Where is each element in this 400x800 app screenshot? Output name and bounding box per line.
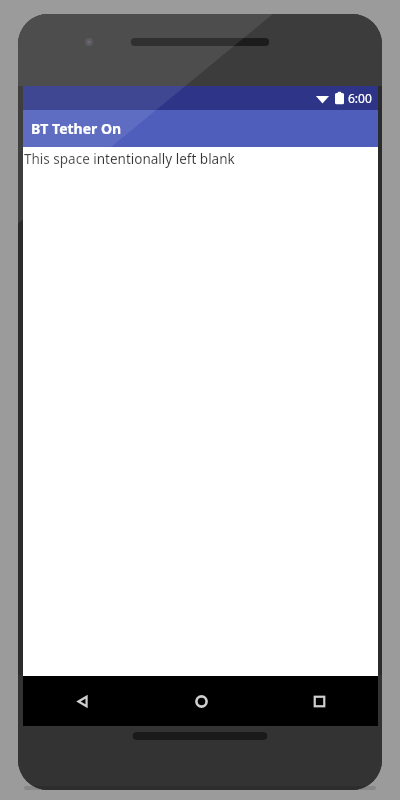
button[interactable]: Recent apps xyxy=(260,676,378,726)
staticText: BT Tether On xyxy=(31,119,122,138)
button[interactable]: Back xyxy=(23,676,142,726)
staticText: 6:00 xyxy=(348,90,372,106)
staticText: This space intentionally left blank xyxy=(24,150,235,168)
button[interactable]: Home xyxy=(142,676,260,726)
button[interactable]: BT Tether On xyxy=(23,110,378,147)
